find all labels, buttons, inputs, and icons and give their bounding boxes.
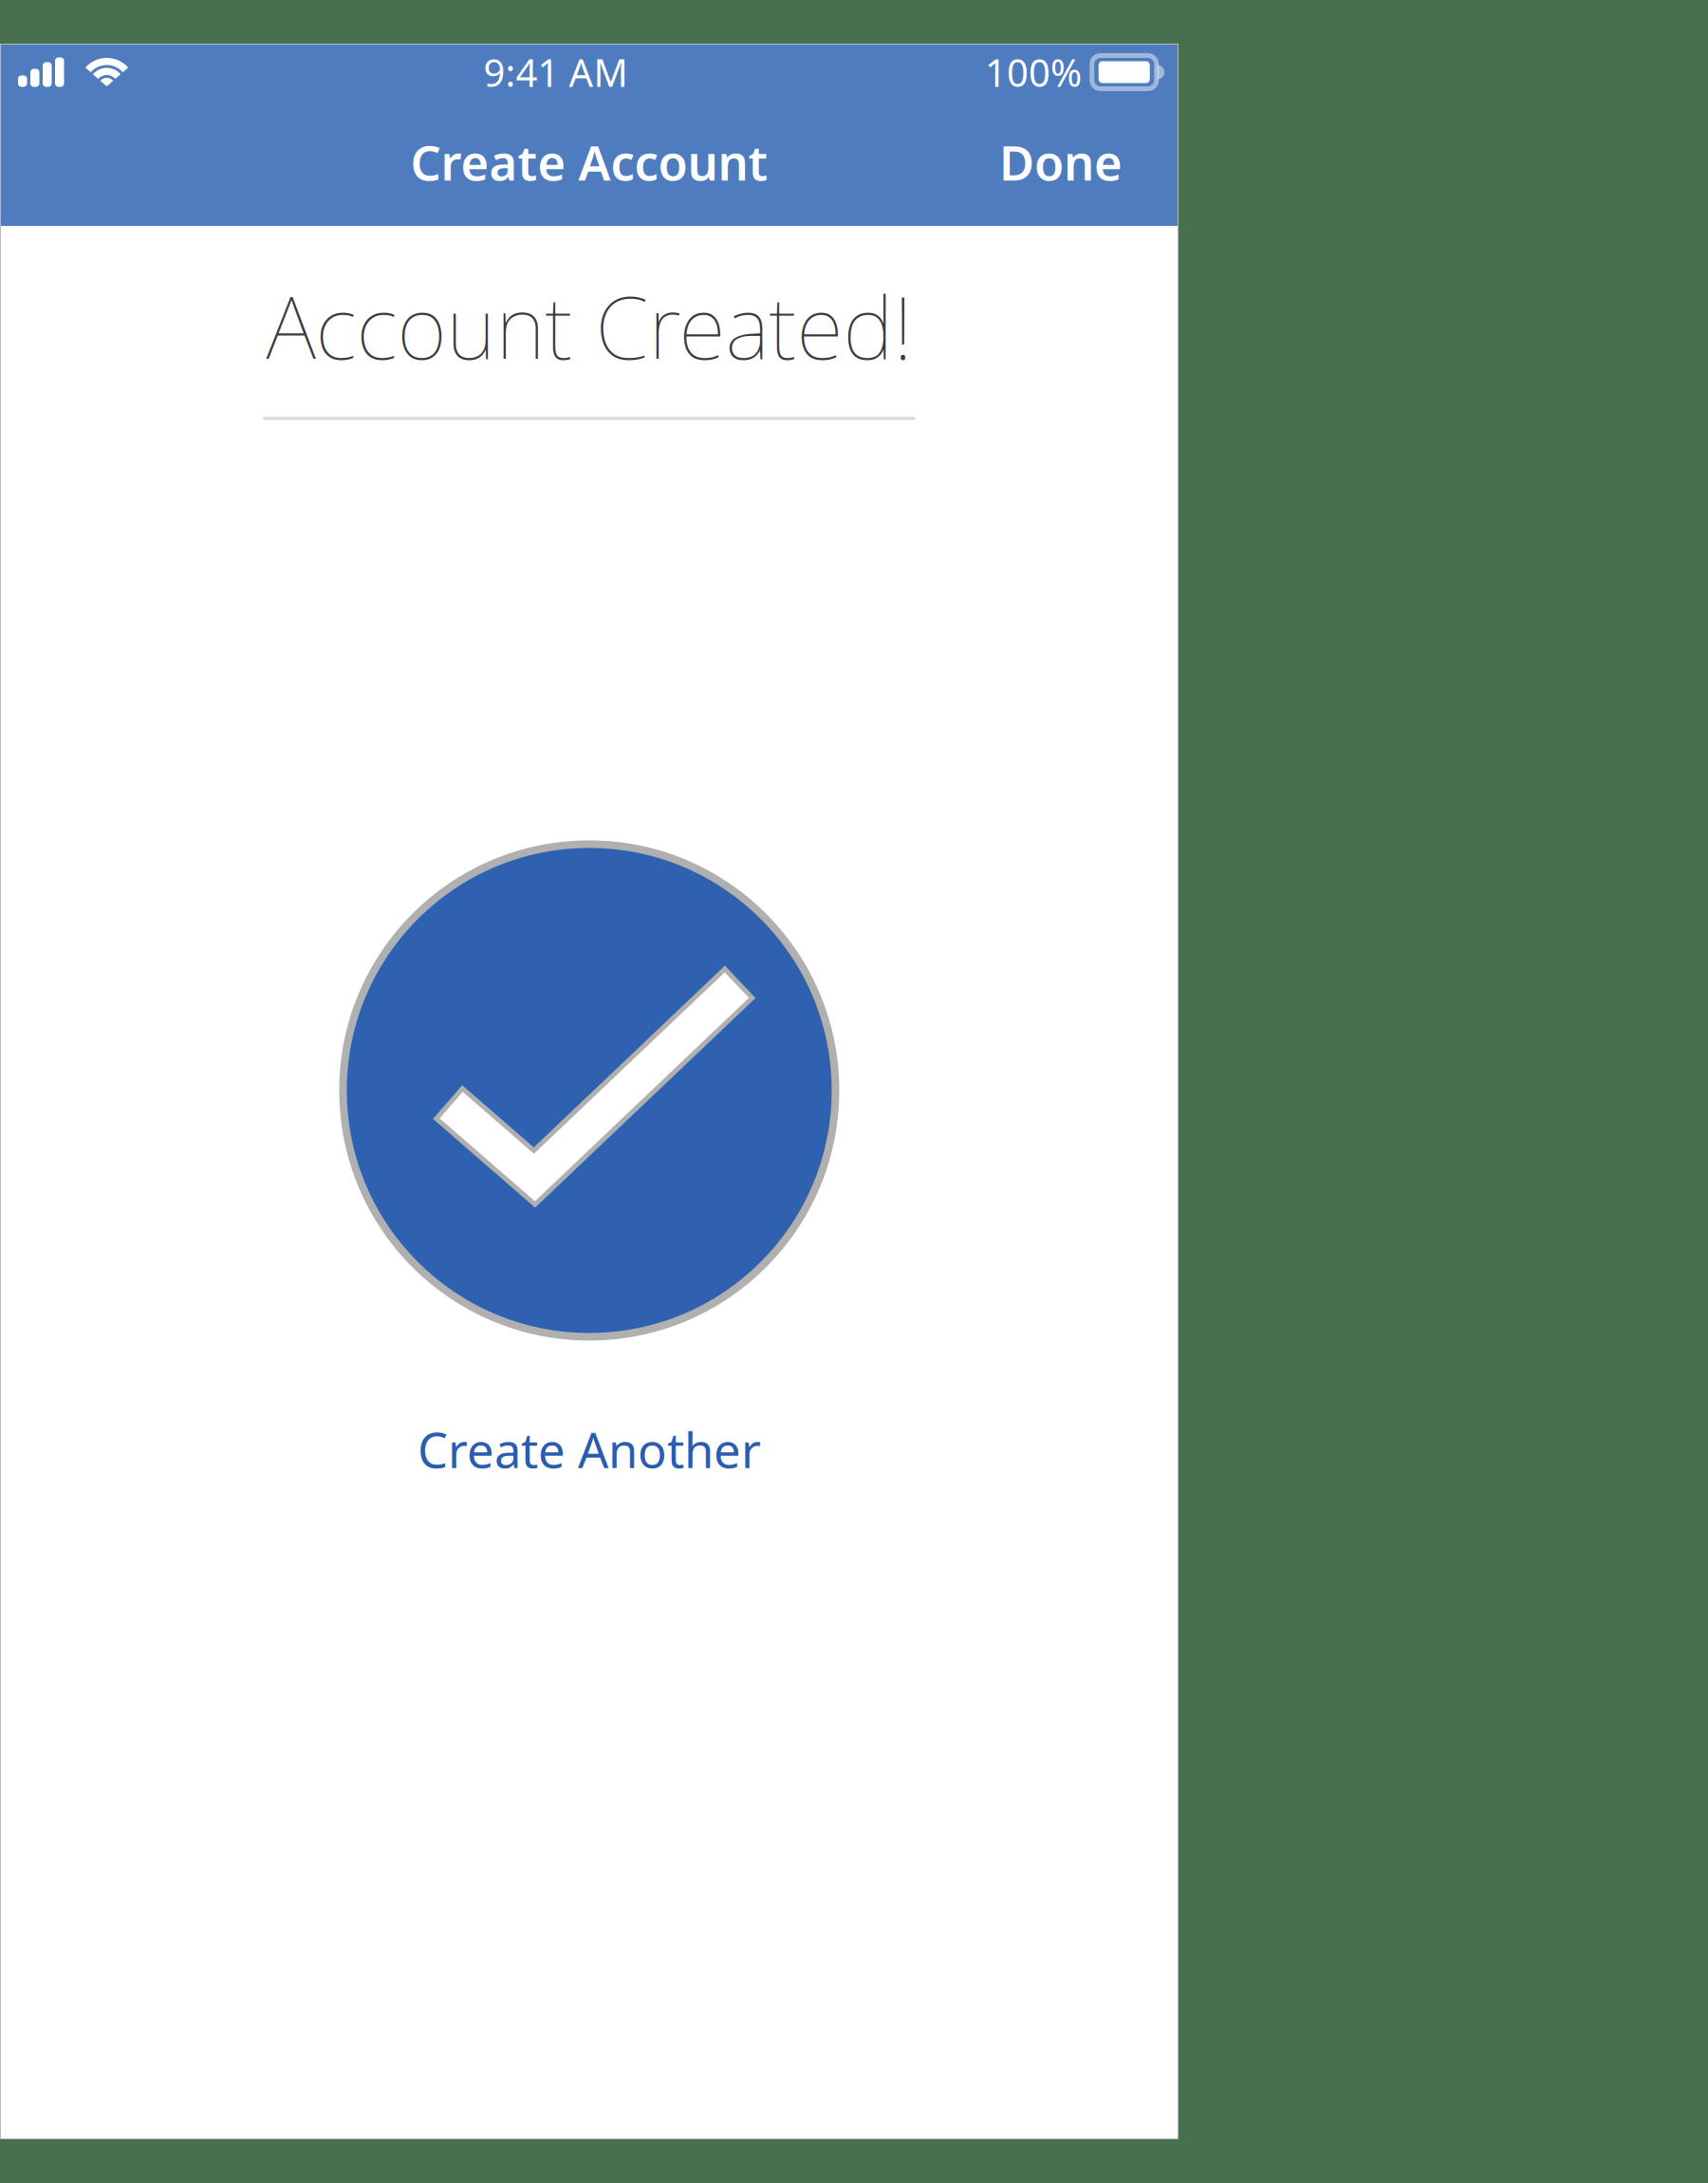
staticText: Create Another — [418, 1417, 761, 1481]
button[interactable]: Create Another — [380, 1404, 799, 1495]
staticText: 9:41 AM — [483, 47, 628, 97]
staticText: Done — [999, 130, 1123, 194]
staticText: Account Created! — [266, 269, 912, 383]
button[interactable]: Done — [971, 98, 1151, 226]
staticText: 100% — [985, 47, 1082, 97]
staticText: Create Account — [410, 130, 768, 194]
